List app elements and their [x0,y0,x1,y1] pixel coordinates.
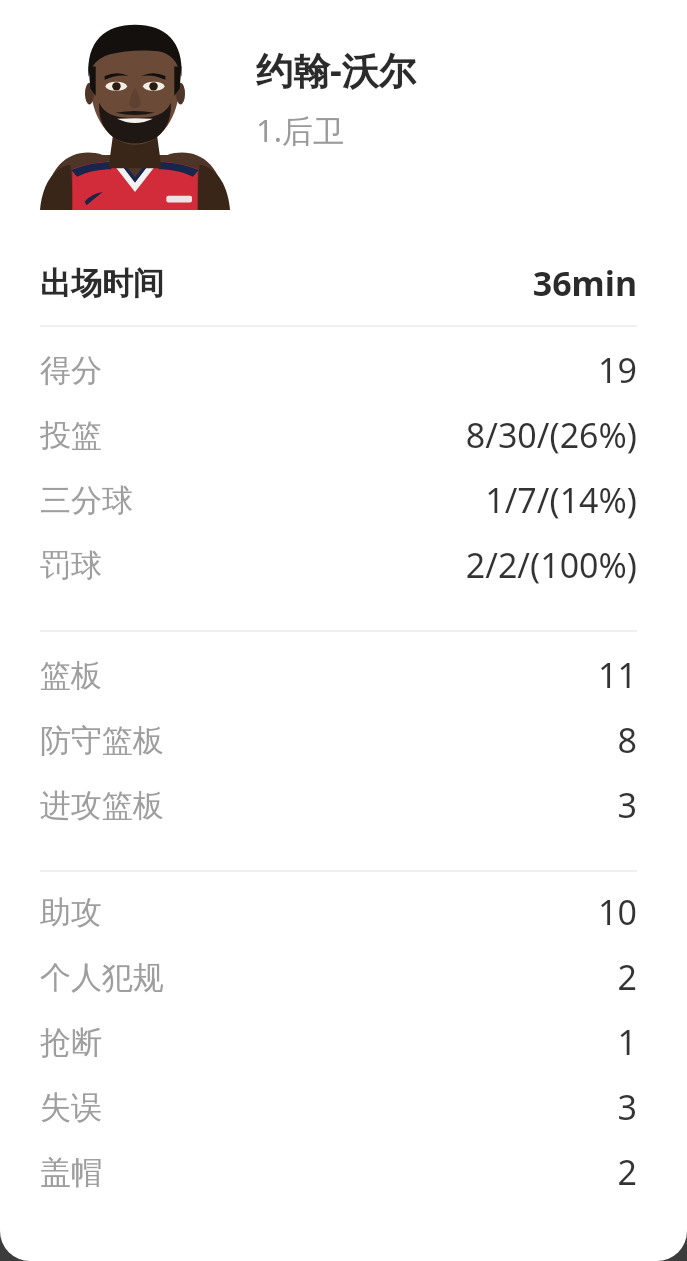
staticText: 抢断 [40,1023,102,1062]
staticText: 助攻 [40,893,102,932]
staticText: 2 [617,954,637,1000]
button[interactable]: 个人犯规 [40,946,637,1008]
staticText: 罚球 [40,546,102,585]
staticText: 三分球 [40,481,133,520]
staticText: 2 [617,1149,637,1195]
staticText: 8/30/(26%) [465,412,637,458]
staticText: 3 [617,1084,637,1130]
staticText: 1 [617,1019,637,1065]
staticText: 19 [598,347,637,393]
button[interactable]: 抢断 [40,1011,637,1073]
button[interactable]: 失误 [40,1076,637,1138]
button[interactable]: 三分球 [40,469,637,531]
staticText: 出场时间 [40,264,164,303]
staticText: 盖帽 [40,1153,102,1192]
button[interactable]: 得分 [40,339,637,401]
button[interactable]: 盖帽 [40,1141,637,1203]
staticText: 得分 [40,351,102,390]
staticText: 个人犯规 [40,958,164,997]
button[interactable]: 进攻篮板 [40,774,637,836]
other: Player photo [40,20,230,210]
staticText: 3 [617,782,637,828]
staticText: 失误 [40,1088,102,1127]
staticText: 进攻篮板 [40,786,164,825]
staticText: 8 [617,717,637,763]
staticText: 约翰-沃尔 [256,44,416,95]
button[interactable]: 助攻 [40,881,637,943]
staticText: 篮板 [40,656,102,695]
staticText: 投篮 [40,416,102,455]
staticText: 10 [598,889,637,935]
staticText: 2/2/(100%) [465,542,637,588]
button[interactable]: 篮板 [40,644,637,706]
staticText: 11 [598,652,637,698]
staticText: 1.后卫 [256,109,345,151]
staticText: 1/7/(14%) [485,477,637,523]
button[interactable]: 罚球 [40,534,637,596]
button[interactable]: 投篮 [40,404,637,466]
button[interactable]: 出场时间 [40,252,637,314]
button[interactable]: 防守篮板 [40,709,637,771]
button[interactable]: 约翰-沃尔 [256,44,416,151]
staticText: 36min [532,260,637,306]
staticText: 防守篮板 [40,721,164,760]
